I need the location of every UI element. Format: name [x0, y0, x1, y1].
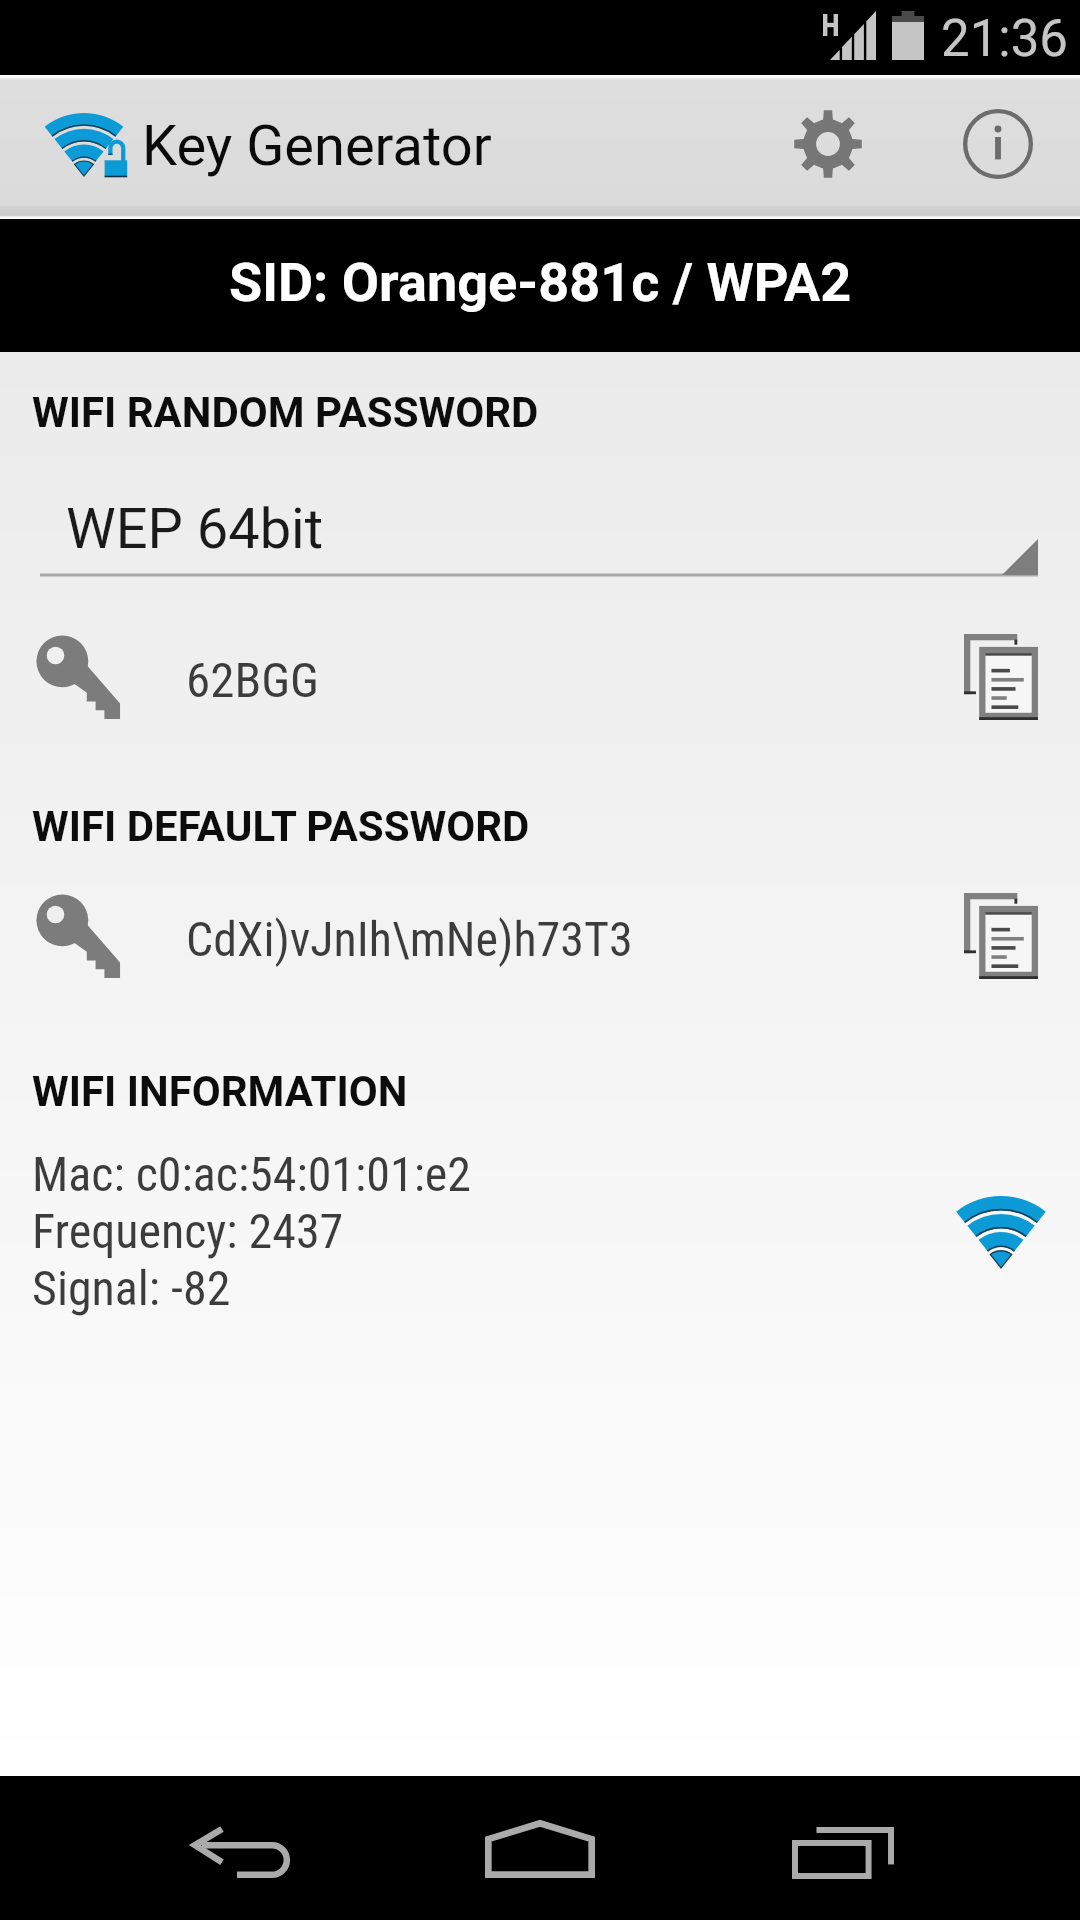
button[interactable]: Home [460, 1776, 620, 1920]
button[interactable]: CdXi)vJnIh\mNe)h73T3 [0, 893, 1080, 985]
staticText: 62BGG [186, 652, 320, 709]
staticText: CdXi)vJnIh\mNe)h73T3 [186, 911, 633, 967]
staticText: 21:36 [941, 9, 1069, 69]
button[interactable]: Info [938, 75, 1058, 213]
button[interactable]: Recent apps [762, 1776, 922, 1920]
button[interactable]: Settings [768, 75, 888, 213]
staticText: WIFI RANDOM PASSWORD [32, 388, 539, 437]
button[interactable]: 62BGG [0, 634, 1080, 726]
button[interactable]: WEP 64bit [40, 470, 1038, 590]
staticText: Signal: -82 [32, 1260, 231, 1316]
staticText: Key Generator [142, 113, 492, 179]
staticText: WIFI INFORMATION [32, 1067, 408, 1116]
button[interactable]: Copy to clipboard [944, 890, 1058, 982]
staticText: WIFI DEFAULT PASSWORD [32, 802, 530, 851]
staticText: Mac: c0:ac:54:01:01:e2 [32, 1146, 472, 1202]
staticText: WEP 64bit [66, 496, 324, 562]
staticText: Frequency: 2437 [32, 1203, 344, 1259]
button[interactable]: Back [160, 1776, 320, 1920]
staticText: SID: Orange-881c / WPA2 [229, 251, 852, 314]
button[interactable]: Copy to clipboard [944, 631, 1058, 723]
